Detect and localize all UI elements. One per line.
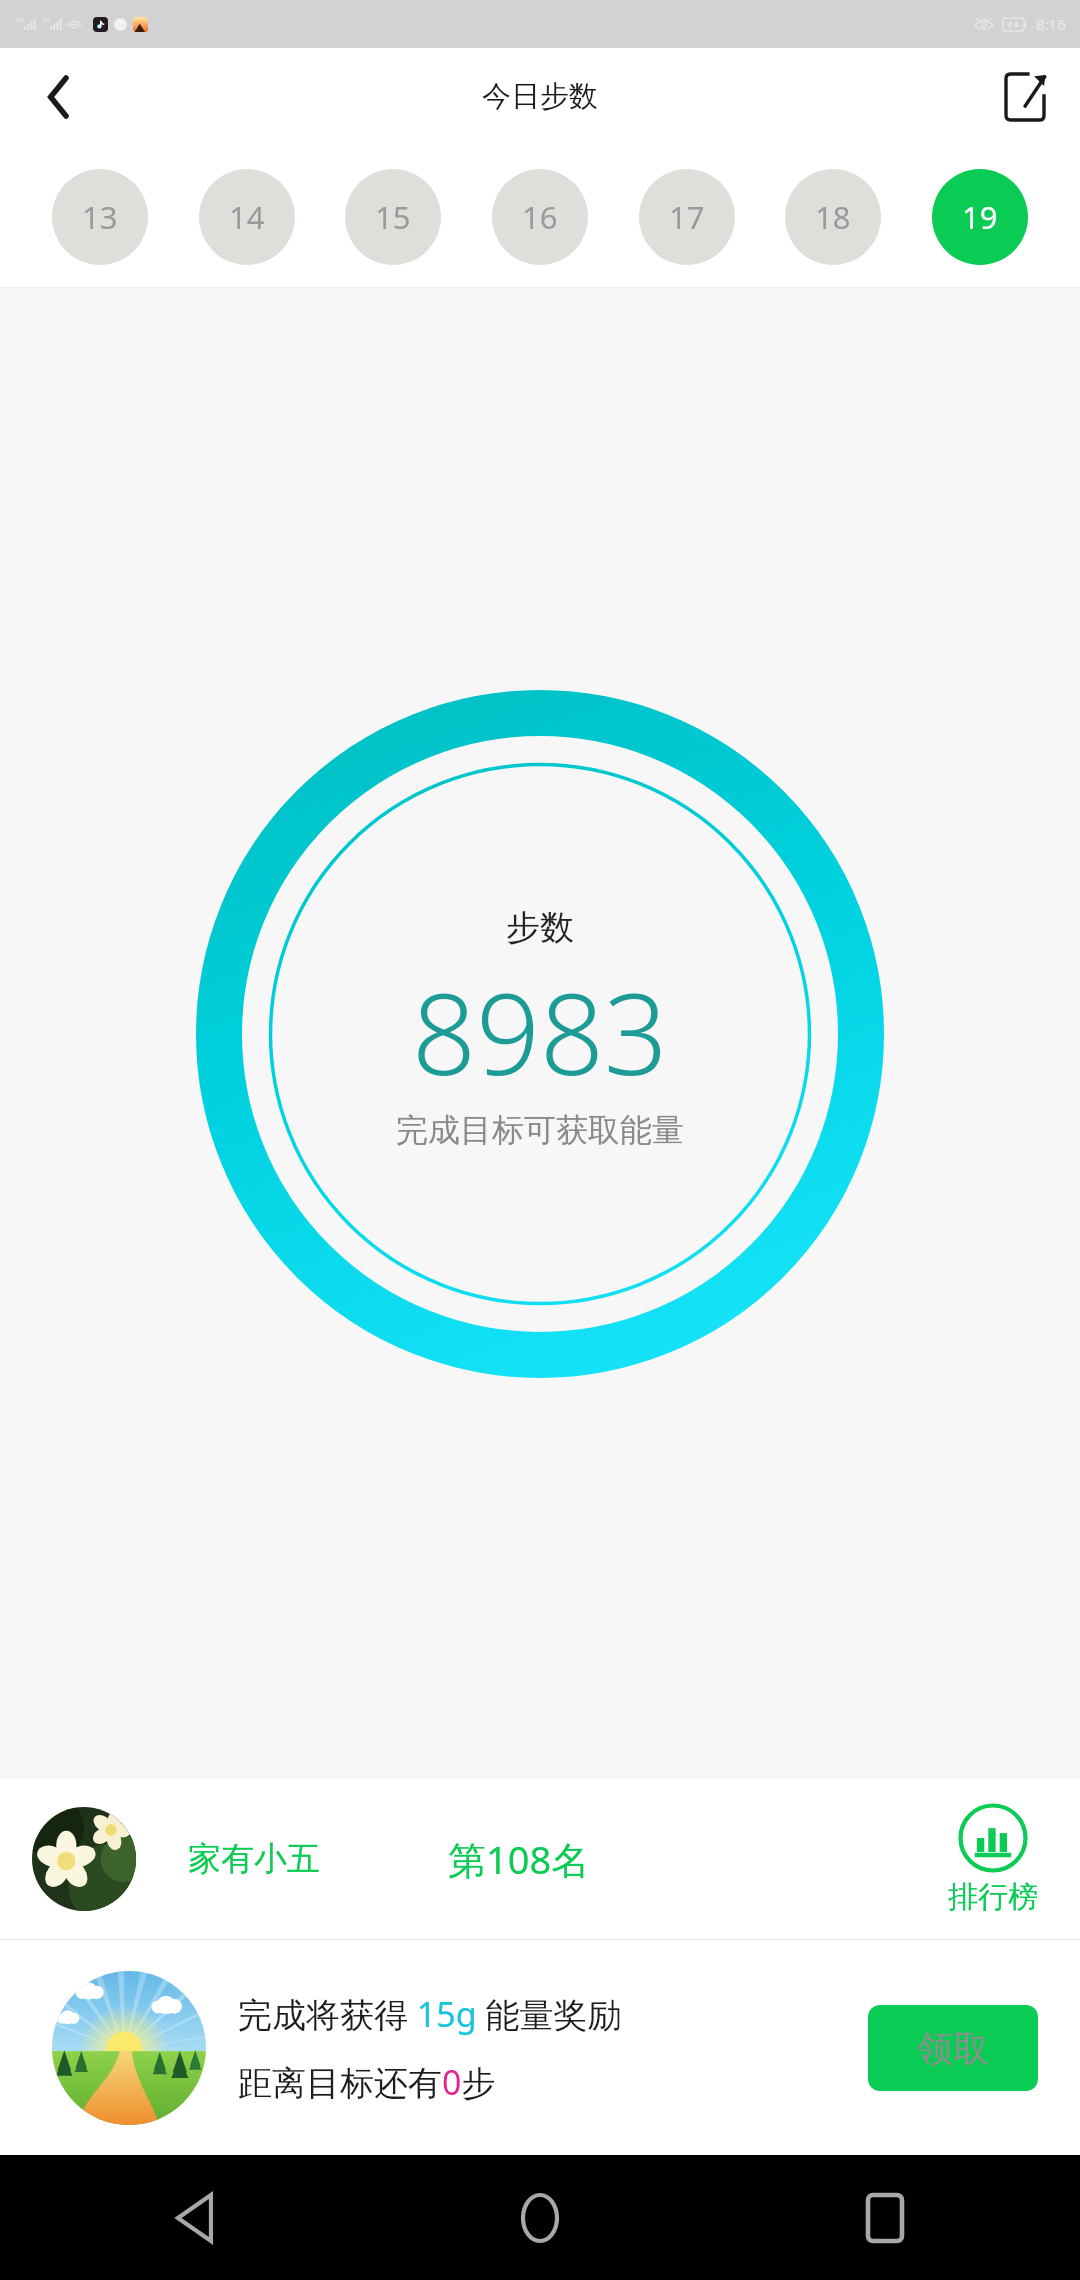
staticText: 距离目标还有0步 [238, 2059, 496, 2105]
staticText: 家有小五 [188, 1838, 320, 1880]
button[interactable]: Back [20, 58, 98, 136]
staticText: 领取 [917, 2026, 989, 2071]
staticText: 19 [962, 196, 998, 238]
staticText: 完成将获得 15g 能量奖励 [238, 1991, 622, 2037]
button[interactable]: 17 [639, 169, 735, 265]
staticText: 完成目标可获取能量 [396, 1110, 684, 1150]
staticText: 第108名 [448, 1833, 590, 1885]
staticText: 8983 [412, 955, 668, 1108]
button[interactable]: 15 [345, 169, 441, 265]
staticText: 8:16 [1036, 14, 1066, 34]
staticText: 18 [815, 196, 851, 238]
button[interactable]: 13 [52, 169, 148, 265]
staticText: 15 [375, 196, 411, 238]
button[interactable]: 16 [492, 169, 588, 265]
button[interactable]: Back [150, 2173, 240, 2263]
button[interactable] [32, 1807, 136, 1911]
button[interactable]: 排行榜 [948, 1803, 1038, 1916]
button[interactable]: Share [982, 54, 1068, 140]
button[interactable]: 18 [785, 169, 881, 265]
staticText: 14 [229, 196, 265, 238]
staticText: 步数 [506, 906, 574, 949]
staticText: 今日步数 [482, 78, 598, 115]
staticText: 16 [522, 196, 558, 238]
staticText: 2G [42, 16, 50, 24]
button[interactable]: 领取 [868, 2005, 1038, 2091]
staticText: 4G [16, 16, 24, 24]
button[interactable]: Home [495, 2173, 585, 2263]
button[interactable]: 14 [199, 169, 295, 265]
button[interactable]: Recent apps [840, 2173, 930, 2263]
button[interactable]: 19 [932, 169, 1028, 265]
staticText: 排行榜 [948, 1878, 1038, 1916]
staticText: 13 [82, 196, 118, 238]
staticText: 17 [669, 196, 705, 238]
